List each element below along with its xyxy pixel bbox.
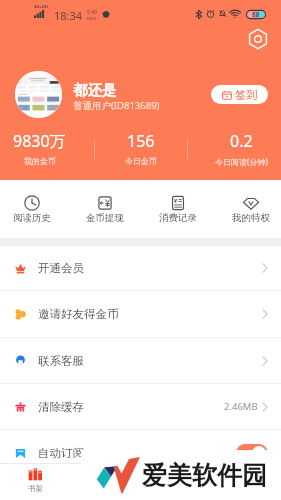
button[interactable]: 联系客服 <box>0 338 281 383</box>
staticText: 我的特权 <box>232 212 270 224</box>
button[interactable]: 阅读历史 <box>0 180 68 238</box>
button[interactable]: 消费记录 <box>141 180 214 238</box>
button[interactable]: 156 <box>90 130 191 166</box>
staticText: 自动订阅 <box>38 446 84 460</box>
staticText: 今日阅读(分钟) <box>215 156 268 167</box>
staticText: 开通会员 <box>38 261 84 275</box>
button[interactable]: 我的特权 <box>214 180 281 238</box>
button[interactable]: 签到 <box>211 85 268 104</box>
button[interactable]: 书城 <box>71 464 141 500</box>
staticText: 爱美软件园 <box>142 460 267 491</box>
staticText: 签到 <box>235 88 257 102</box>
staticText: 156 <box>127 130 155 152</box>
button[interactable]: 清除缓存 <box>0 384 281 429</box>
staticText: 2.46MB <box>224 400 258 413</box>
staticText: 金币提现 <box>86 212 124 224</box>
button[interactable] <box>15 71 62 118</box>
staticText: 联系客服 <box>38 354 84 368</box>
staticText: 阅读历史 <box>13 212 51 224</box>
staticText: 0.2 <box>230 130 253 152</box>
button[interactable]: 0.2 <box>191 130 281 167</box>
staticText: 9830万 <box>13 130 66 152</box>
button[interactable]: 发现 <box>141 464 211 500</box>
button[interactable]: 9830万 <box>0 130 90 166</box>
staticText: 书城 <box>99 484 114 493</box>
button[interactable]: 我的 <box>211 464 281 500</box>
staticText: 4G+HD <box>34 4 49 10</box>
staticText: 邀请好友得金币 <box>38 307 119 321</box>
staticText: 发现 <box>169 484 184 493</box>
button[interactable]: Settings <box>247 28 269 50</box>
staticText: 都还是 <box>73 81 117 99</box>
button[interactable]: 金币提现 <box>68 180 141 238</box>
staticText: KB/S <box>87 16 97 22</box>
staticText: 9.40 <box>87 9 97 16</box>
staticText: 今日金币 <box>125 156 157 166</box>
staticText: 88 <box>252 10 260 19</box>
staticText: 消费记录 <box>159 212 197 224</box>
staticText: 普通用户(ID813689) <box>73 99 160 112</box>
staticText: 18:34 <box>54 8 83 23</box>
staticText: 我的金币 <box>24 156 56 166</box>
staticText: 我的 <box>239 484 254 493</box>
button[interactable]: 开通会员 <box>0 246 281 290</box>
staticText: 清除缓存 <box>38 400 84 414</box>
button[interactable]: 自动订阅 <box>0 430 281 463</box>
button[interactable]: 书架 <box>0 464 71 500</box>
button[interactable]: 邀请好友得金币 <box>0 291 281 337</box>
staticText: 书架 <box>28 484 43 493</box>
